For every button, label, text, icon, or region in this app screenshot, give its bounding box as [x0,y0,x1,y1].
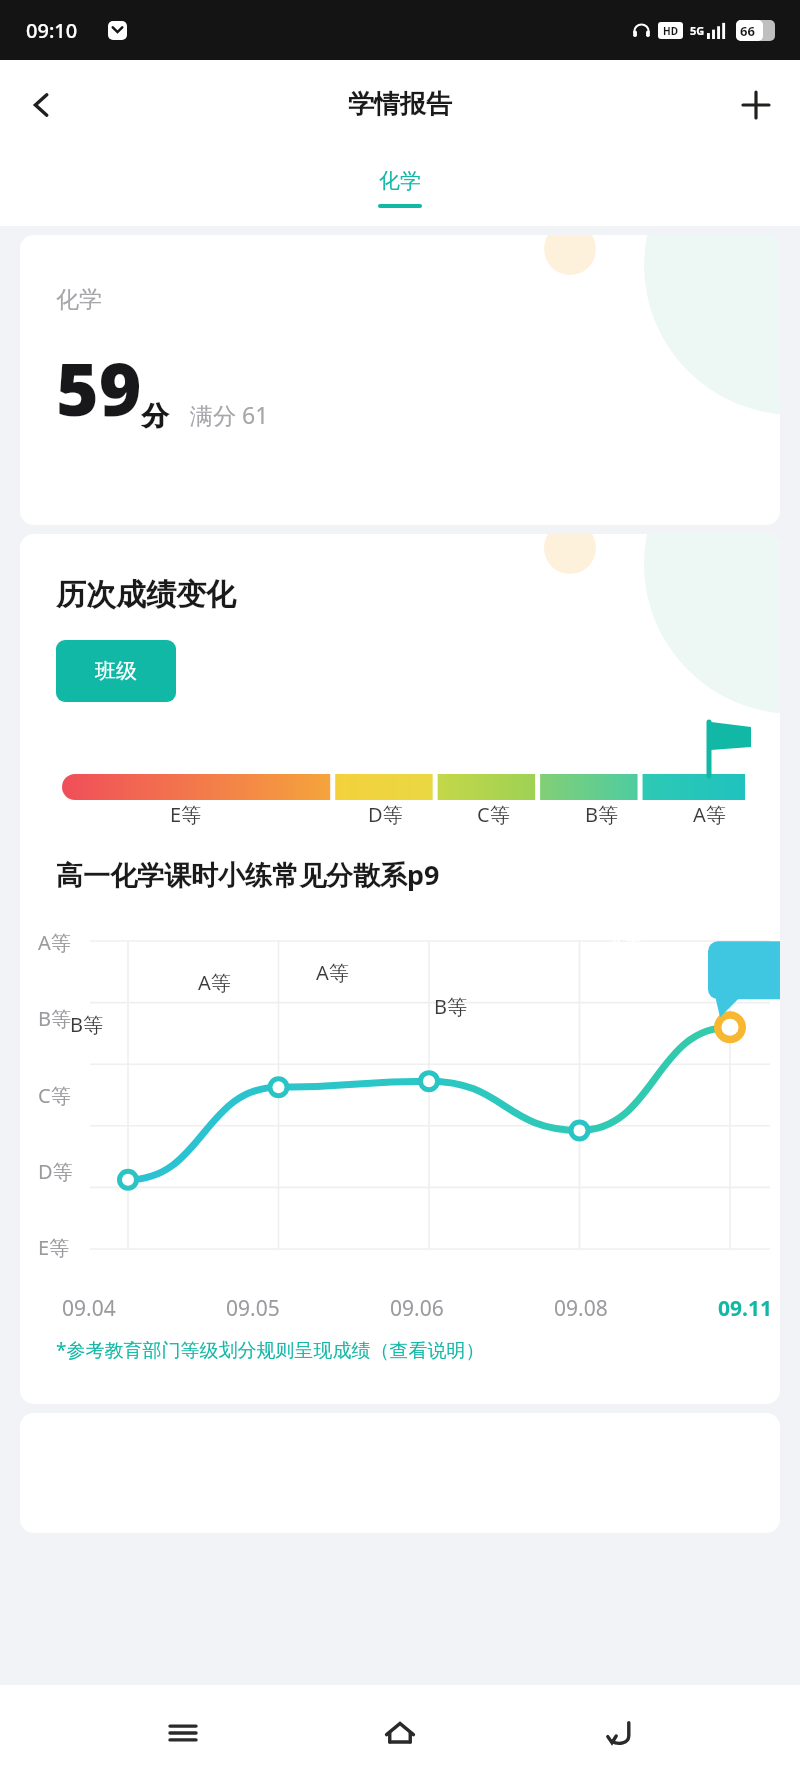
staticText: 班级 [95,658,137,684]
staticText: 高一化学课时小练常见分散系p9 [56,856,440,893]
staticText: 5G [690,23,705,38]
staticText: A等 [316,959,349,986]
staticText: 历次成绩变化 [56,576,236,614]
staticText: 09.08 [554,1294,608,1323]
staticText: 化学 [56,285,102,314]
staticText: C等 [477,801,510,828]
button[interactable]: 化学 [20,235,780,525]
staticText: A等 [38,929,71,956]
button[interactable]: 班级 [56,640,176,702]
staticText: B等 [585,801,618,828]
staticText: 09.05 [226,1294,280,1323]
staticText: D等 [38,1158,73,1185]
staticText: 满分 61 [190,399,269,430]
staticText: E等 [170,801,202,828]
staticText: 59 [56,338,142,437]
staticText: 66 [740,22,755,40]
staticText: HD [663,24,678,38]
button[interactable]: Recent apps [148,1698,218,1768]
staticText: 化学 [379,168,421,194]
button[interactable]: Back [14,77,70,133]
staticText: 09.04 [62,1294,116,1323]
staticText: 09.06 [390,1294,444,1323]
staticText: 09:10 [26,17,78,44]
button[interactable]: 化学 [378,168,422,208]
staticText: 09.11 [718,1294,772,1323]
staticText: A等 [198,969,231,996]
staticText: B等 [38,1005,71,1032]
button[interactable]: Back [583,1698,653,1768]
staticText: D等 [368,801,403,828]
button[interactable]: Home [365,1698,435,1768]
staticText: A等 [693,801,726,828]
staticText: C等 [38,1082,71,1109]
staticText: B等 [70,1011,103,1038]
staticText: B等 [434,993,467,1020]
button[interactable]: *参考教育部门等级划分规则呈现成绩（查看说明） [56,1337,485,1363]
staticText: E等 [38,1234,70,1261]
staticText: 学情报告 [348,88,452,121]
staticText: 分 [142,400,168,433]
button[interactable]: Add [728,77,784,133]
